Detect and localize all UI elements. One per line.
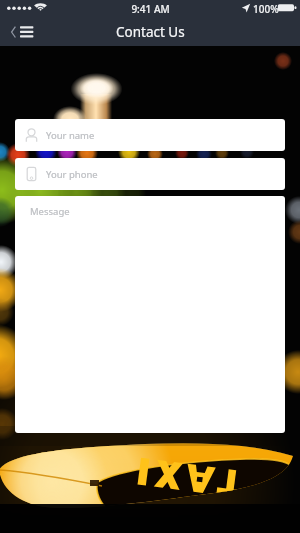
button[interactable]: Your phone	[15, 158, 285, 190]
button[interactable]: Open navigation menu	[9, 19, 41, 45]
staticText: Message	[30, 205, 70, 218]
staticText: Your name	[46, 129, 95, 142]
staticText: 9:41 AM	[131, 2, 170, 16]
button[interactable]: Your name	[15, 119, 285, 151]
staticText: Contact Us	[116, 23, 185, 41]
staticText: Your phone	[46, 168, 98, 181]
staticText: 100%	[253, 2, 279, 16]
